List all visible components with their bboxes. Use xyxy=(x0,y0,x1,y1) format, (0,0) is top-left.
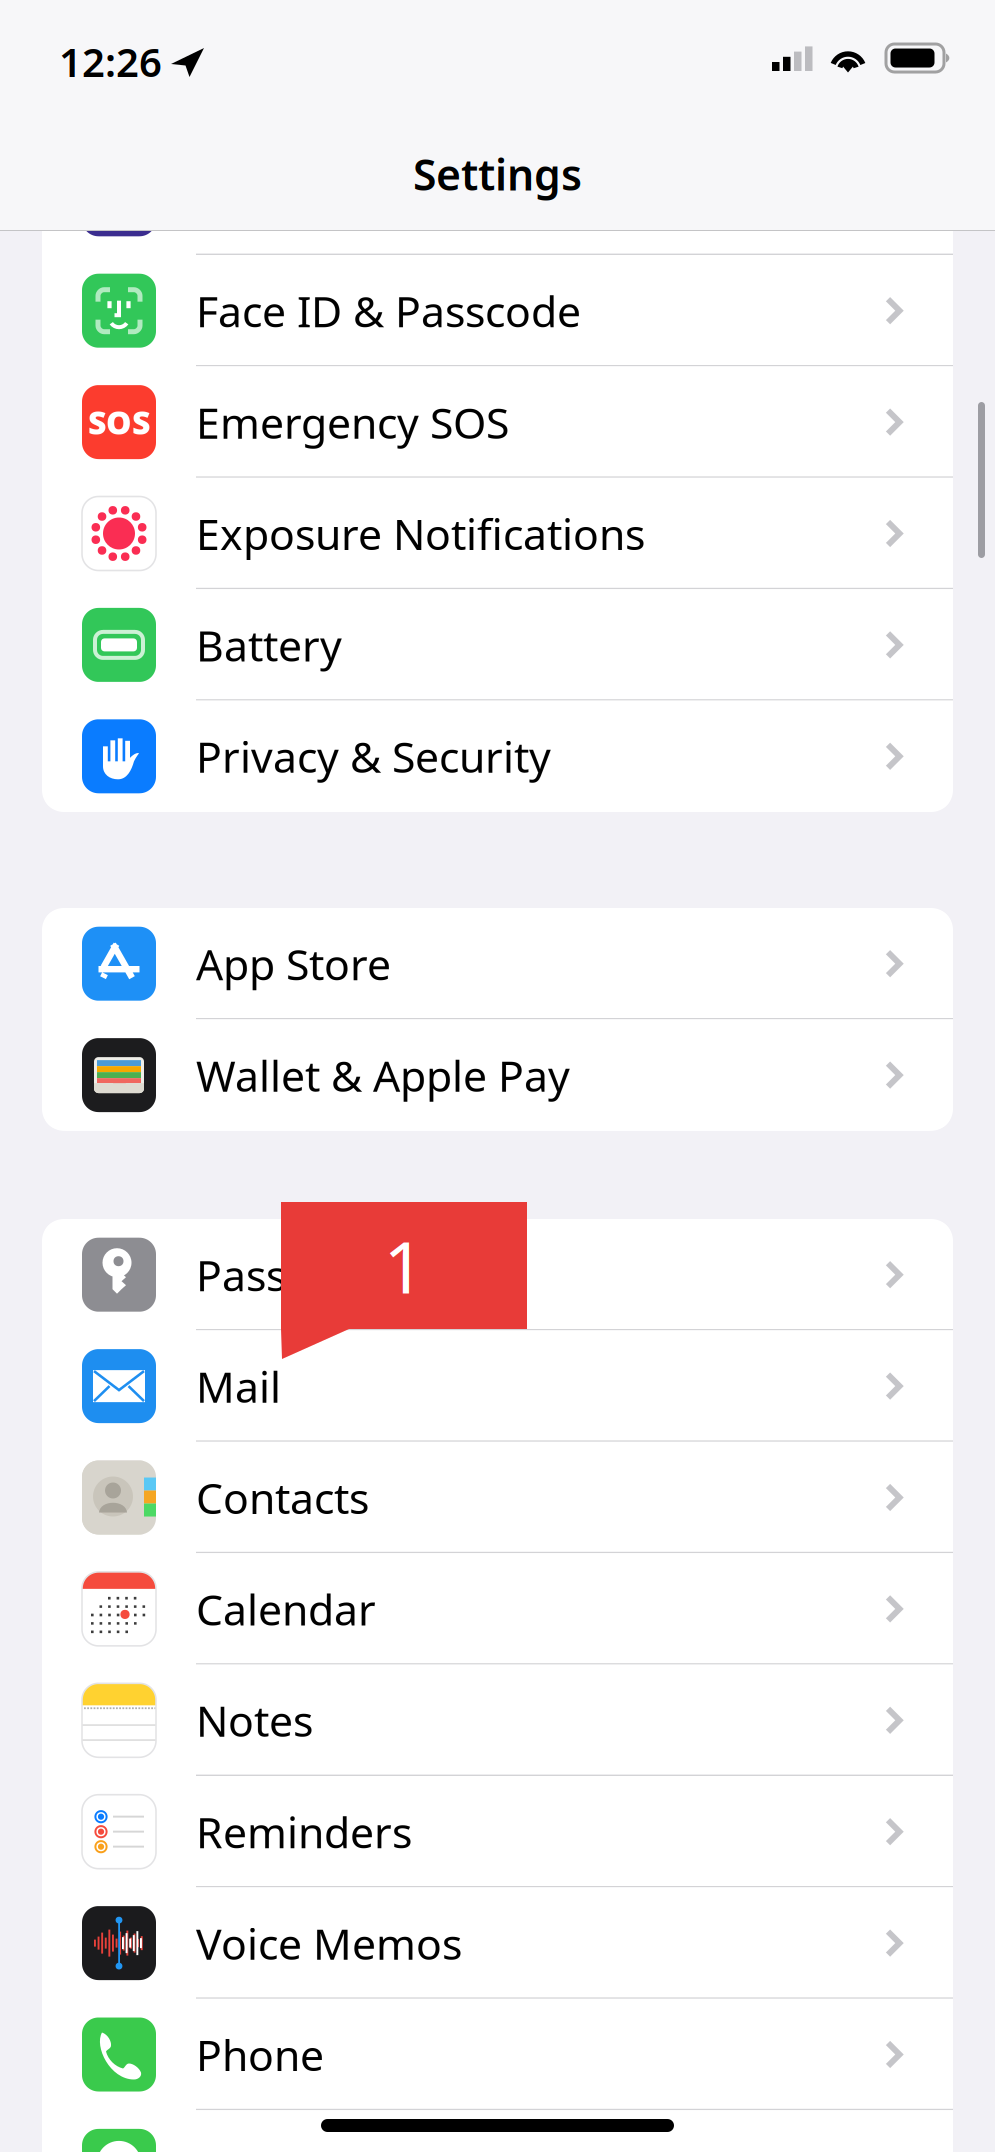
staticText: Mail xyxy=(196,1358,281,1414)
button[interactable]: Contacts xyxy=(42,1442,953,1553)
staticText: Emergency SOS xyxy=(196,394,509,450)
button[interactable]: Messages xyxy=(42,2110,953,2152)
button[interactable]: Calendar xyxy=(42,1553,953,1665)
staticText: Voice Memos xyxy=(196,1915,462,1971)
button[interactable]: Reminders xyxy=(42,1776,953,1887)
button[interactable]: SOS xyxy=(42,366,953,478)
button[interactable]: Screen Time xyxy=(42,144,953,255)
staticText: 1 xyxy=(383,1218,424,1313)
staticText: Battery xyxy=(196,617,342,673)
button[interactable]: Phone xyxy=(42,1999,953,2110)
staticText: Phone xyxy=(196,2026,324,2083)
staticText: Reminders xyxy=(196,1803,412,1860)
button[interactable]: Face ID & Passcode xyxy=(42,255,953,366)
staticText: Exposure Notifications xyxy=(196,505,645,562)
button[interactable]: App Store xyxy=(42,908,953,1019)
staticText: App Store xyxy=(196,935,391,992)
staticText: Calendar xyxy=(196,1581,376,1637)
staticText: Wallet & Apple Pay xyxy=(196,1047,570,1103)
button[interactable]: Exposure Notifications xyxy=(42,478,953,589)
staticText: Passwords xyxy=(196,1246,409,1303)
button[interactable]: Battery xyxy=(42,589,953,701)
button[interactable]: Mail xyxy=(42,1330,953,1442)
staticText: Face ID & Passcode xyxy=(196,282,581,339)
button[interactable]: Notes xyxy=(42,1665,953,1776)
staticText: SOS xyxy=(88,401,150,443)
button[interactable]: Privacy & Security xyxy=(42,701,953,812)
staticText: Privacy & Security xyxy=(196,728,551,785)
button[interactable]: Passwords xyxy=(42,1219,953,1330)
staticText: Notes xyxy=(196,1692,313,1749)
staticText: Contacts xyxy=(196,1469,369,1526)
staticText: Settings xyxy=(413,146,582,202)
button[interactable]: Wallet & Apple Pay xyxy=(42,1019,953,1131)
staticText: Screen Time xyxy=(196,171,440,228)
button[interactable]: Voice Memos xyxy=(42,1887,953,1999)
staticText: 12:26 xyxy=(59,35,162,88)
